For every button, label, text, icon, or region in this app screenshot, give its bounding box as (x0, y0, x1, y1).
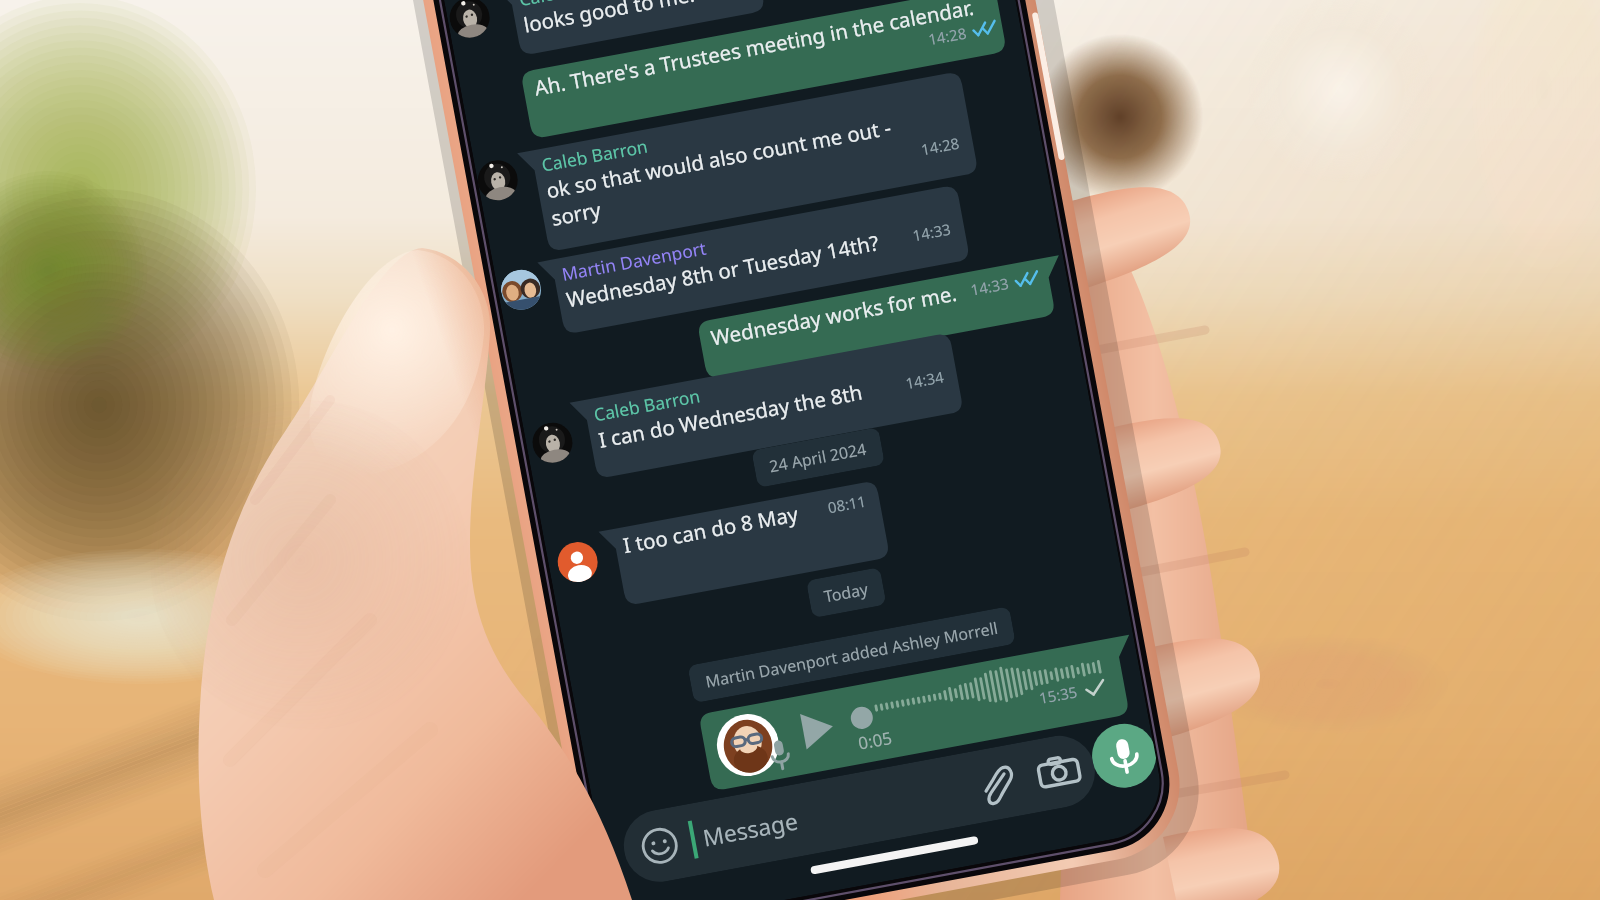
staticText: 14:33 (911, 219, 953, 245)
staticText: 14:33 (969, 273, 1011, 300)
button[interactable]: Wednesday works for me. (697, 255, 1069, 379)
button[interactable]: Message (618, 730, 1101, 888)
staticText: Ah. There's a Trustees meeting in the ca… (532, 0, 977, 102)
staticText: Martin Davenport (560, 235, 709, 286)
staticText: Caleb Barron (539, 133, 650, 177)
button[interactable]: Attach (973, 760, 1019, 807)
staticText: Wednesday 8th or Tuesday 14th? (564, 228, 881, 313)
staticText: ok so that would also count me out - (544, 113, 894, 204)
staticText: 08:11 (826, 491, 868, 517)
staticText: Caleb Barron (592, 383, 702, 426)
staticText: 0:05 (856, 726, 894, 755)
button[interactable]: Caleb Barron (569, 332, 964, 481)
button[interactable]: Ah. There's a Trustees meeting in the ca… (520, 0, 1007, 139)
staticText: Wednesday works for me. (708, 279, 959, 352)
staticText: Martin Davenport added Ashley Morrell (704, 617, 1000, 693)
button[interactable]: Caleb Barron (517, 71, 978, 254)
staticText: I can do Wednesday the 8th (596, 378, 865, 454)
staticText: Message (700, 805, 800, 853)
button[interactable]: Record voice message (1087, 719, 1160, 793)
button[interactable]: Martin Davenport (537, 185, 970, 337)
staticText: 14:28 (926, 22, 968, 49)
staticText: 15:35 (1037, 681, 1079, 708)
staticText: Caleb Barron (517, 0, 627, 11)
button[interactable]: Camera (1033, 746, 1085, 797)
staticText: 14:28 (919, 133, 961, 159)
staticText: sorry (549, 195, 603, 232)
staticText: I too can do 8 May (621, 499, 801, 559)
staticText: 24 April 2024 (767, 438, 869, 477)
staticText: 14:34 (904, 366, 946, 393)
button[interactable]: 0:05 (698, 635, 1143, 791)
staticText: Today (822, 578, 870, 607)
staticText: looks good to me! (521, 0, 696, 39)
button[interactable]: Caleb Barron (495, 0, 765, 58)
button[interactable]: I too can do 8 May (598, 480, 890, 608)
